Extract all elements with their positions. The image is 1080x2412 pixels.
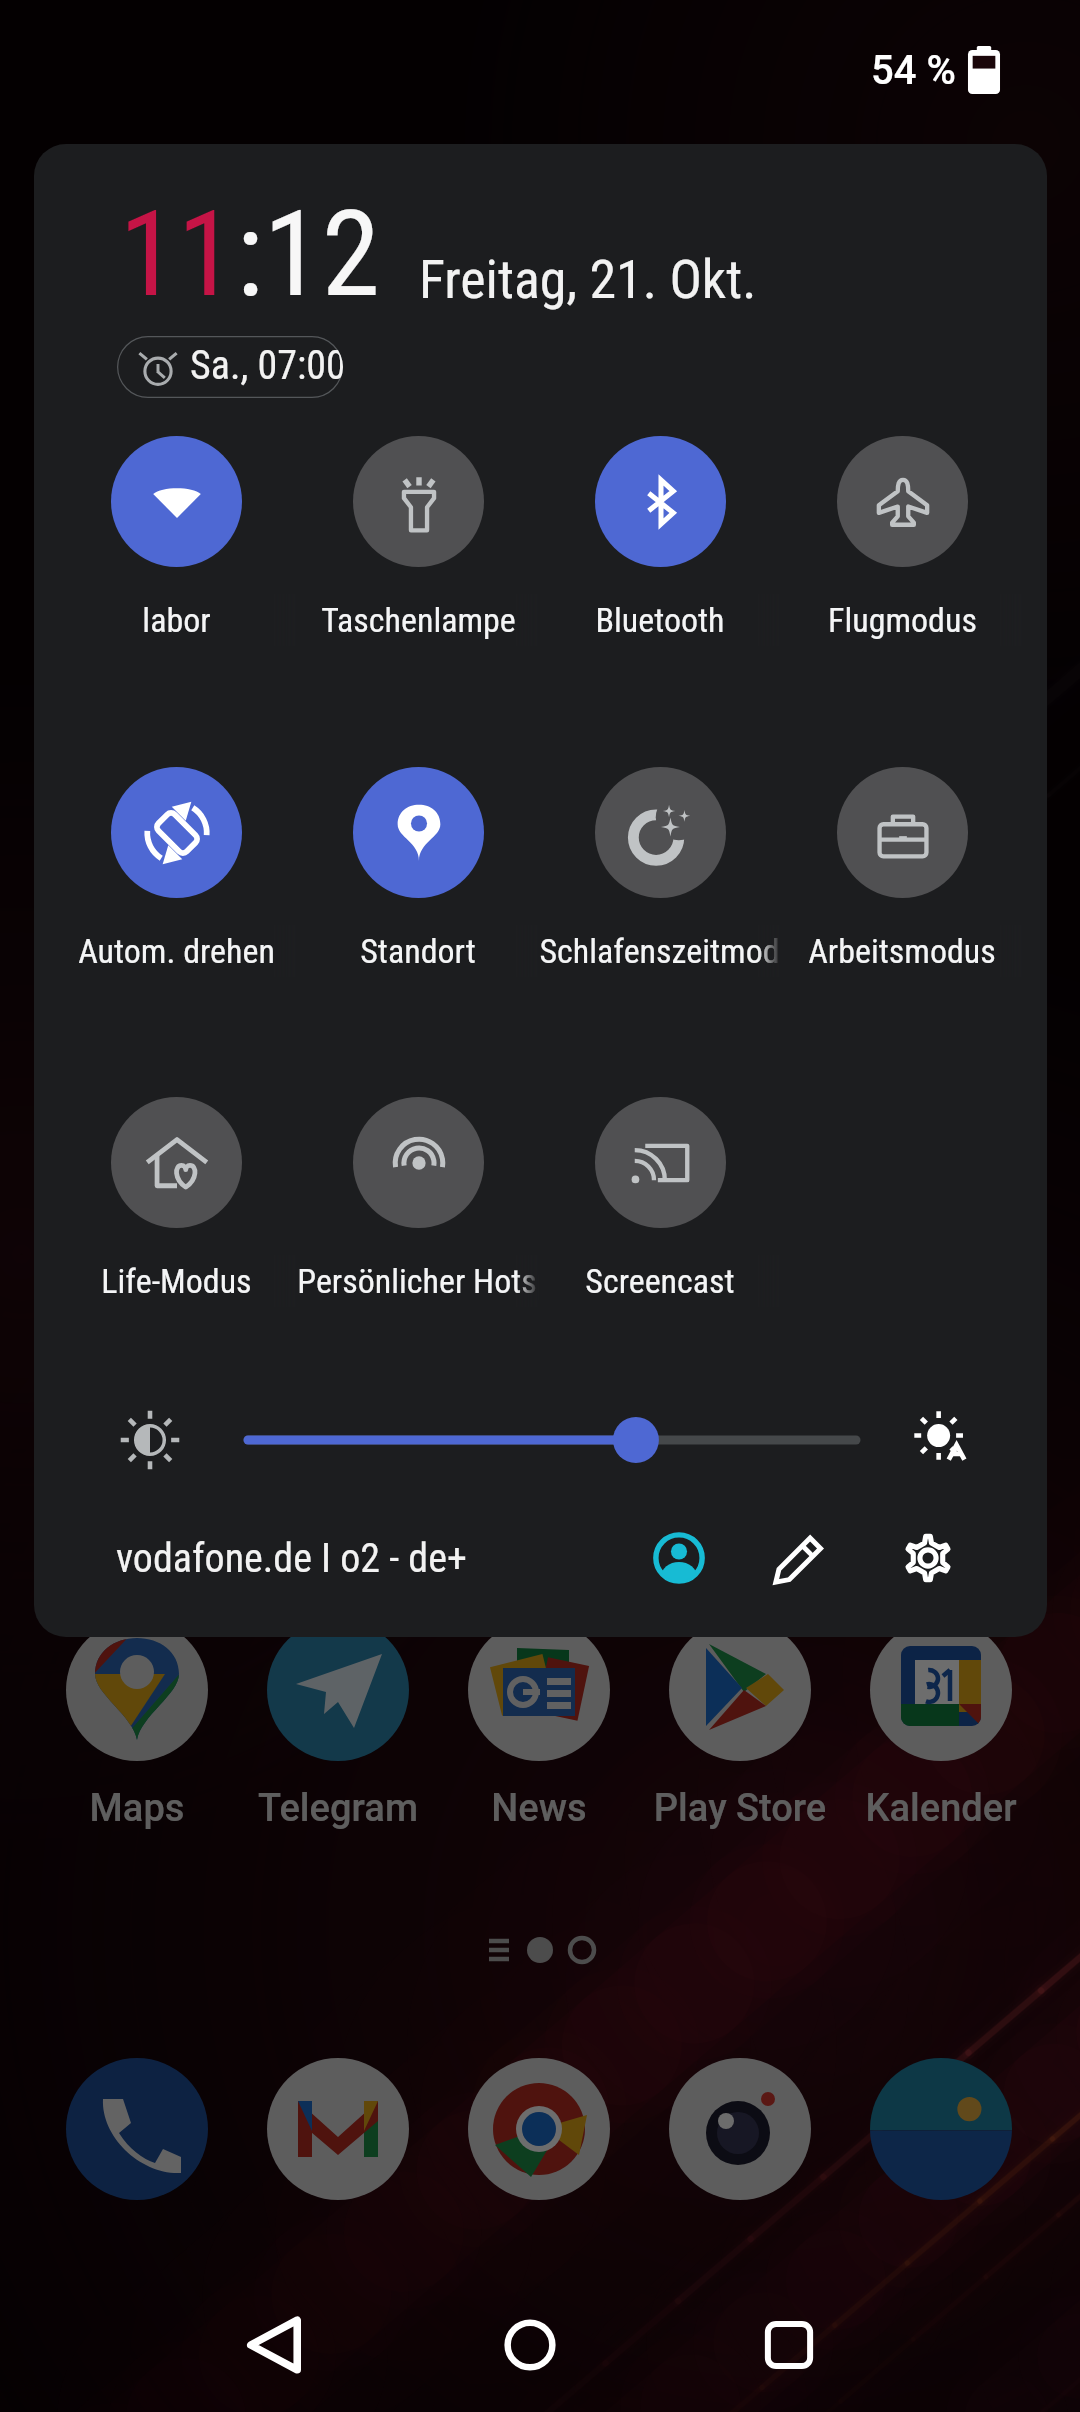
staticText: Autom. drehen	[78, 931, 275, 971]
button[interactable]: labor	[55, 436, 297, 666]
staticText: Screencast	[585, 1261, 735, 1301]
staticText: Maps	[7, 1786, 267, 1831]
staticText: vodafone.de I o2 - de+	[116, 1535, 467, 1582]
button[interactable]: Settings	[896, 1526, 960, 1590]
staticText: Kalender	[811, 1786, 1071, 1831]
button[interactable]: Life-Modus	[55, 1097, 297, 1327]
button[interactable]: Edit tiles	[768, 1526, 832, 1590]
staticText: labor	[142, 600, 211, 640]
staticText: Flugmodus	[828, 600, 977, 640]
staticText: Standort	[360, 931, 476, 971]
button[interactable]: Brightness slider	[230, 1402, 874, 1478]
staticText: Arbeitsmodus	[808, 931, 996, 971]
staticText: 11	[119, 186, 236, 324]
staticText: Persönlicher Hotspot	[297, 1261, 539, 1301]
staticText: Freitag, 21. Okt.	[419, 248, 757, 311]
staticText: Telegram	[208, 1786, 468, 1831]
button[interactable]: Arbeitsmodus	[781, 767, 1023, 997]
button[interactable]: Taschenlampe	[297, 436, 539, 666]
staticText: Bluetooth	[595, 600, 725, 640]
staticText: :12	[236, 186, 381, 324]
button[interactable]: Schlafenszeitmodus	[539, 767, 781, 997]
button[interactable]: Auto brightness	[908, 1406, 976, 1474]
button[interactable]: Flugmodus	[781, 436, 1023, 666]
button[interactable]: Autom. drehen	[55, 767, 297, 997]
button[interactable]: User profile	[647, 1526, 711, 1590]
button[interactable]: Bluetooth	[539, 436, 781, 666]
staticText: News	[409, 1786, 669, 1831]
staticText: Life-Modus	[101, 1261, 252, 1301]
button[interactable]: Sa., 07:00	[117, 336, 343, 398]
button[interactable]: Home	[470, 2285, 590, 2405]
staticText: 54 %	[871, 47, 956, 94]
button[interactable]: Standort	[297, 767, 539, 997]
staticText: Schlafenszeitmodus	[539, 931, 781, 971]
staticText: Sa., 07:00	[190, 342, 343, 389]
button[interactable]: Back	[214, 2285, 334, 2405]
button[interactable]: Recent apps	[729, 2285, 849, 2405]
button[interactable]: Persönlicher Hotspot	[297, 1097, 539, 1327]
staticText: Play Store	[610, 1786, 870, 1831]
button[interactable]: Brightness low	[116, 1406, 184, 1474]
button[interactable]: Screencast	[539, 1097, 781, 1327]
staticText: Taschenlampe	[321, 600, 516, 640]
